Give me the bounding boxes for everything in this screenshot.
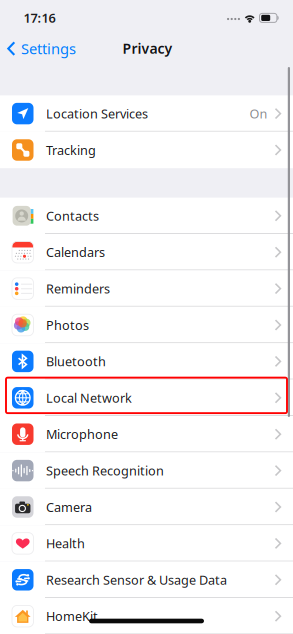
button[interactable]: Speech Recognition [0,452,293,489]
staticText: Settings [21,39,76,59]
staticText: Tracking [46,141,96,159]
staticText: Bluetooth [46,353,106,370]
button[interactable]: Contacts [0,198,293,234]
button[interactable]: Health [0,525,293,562]
staticText: Reminders [46,280,110,297]
button[interactable]: Bluetooth [0,343,293,380]
button[interactable]: Camera [0,489,293,525]
button[interactable]: Microphone [0,416,293,452]
button[interactable]: Location Services [0,95,293,132]
staticText: Microphone [46,426,118,443]
button[interactable]: Local Network [0,380,293,416]
staticText: Research Sensor & Usage Data [46,571,227,588]
staticText: Privacy [122,39,172,58]
staticText: On [249,105,267,122]
staticText: Health [46,535,85,552]
staticText: Calendars [46,244,105,261]
staticText: Photos [46,316,89,334]
button[interactable]: Settings [0,34,82,64]
staticText: Local Network [46,389,132,406]
staticText: Speech Recognition [46,462,164,479]
button[interactable]: Calendars [0,234,293,270]
staticText: Camera [46,498,92,516]
staticText: Contacts [46,207,99,224]
staticText: HomeKit [46,608,98,625]
button[interactable]: Reminders [0,270,293,307]
button[interactable]: Photos [0,307,293,343]
staticText: 17:16 [23,9,55,26]
staticText: Location Services [46,105,148,122]
button[interactable]: Tracking [0,132,293,168]
button[interactable]: HomeKit [0,598,293,634]
button[interactable]: Research Sensor & Usage Data [0,562,293,598]
